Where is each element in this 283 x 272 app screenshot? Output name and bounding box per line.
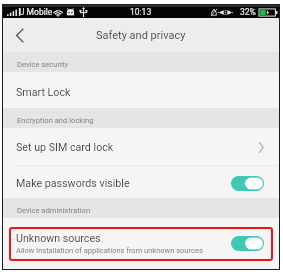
staticText: Unknown sources (16, 232, 101, 245)
staticText: Safety and privacy (96, 29, 186, 42)
staticText: 10:13 (130, 7, 152, 17)
button[interactable]: Smart Lock (3, 76, 279, 108)
button[interactable]: Set up SIM card lock (3, 129, 279, 166)
staticText: Device administration (17, 206, 91, 215)
button[interactable]: Make passwords visible (3, 167, 279, 199)
staticText: Smart Lock (16, 86, 71, 99)
staticText: Device security (17, 60, 68, 69)
button[interactable]: Unknown sources (3, 226, 279, 260)
staticText: Set up SIM card lock (16, 141, 114, 154)
staticText: Allow installation of applications from … (16, 246, 203, 255)
button[interactable]: Toggle on (231, 176, 264, 191)
button[interactable]: Toggle on (231, 236, 264, 251)
staticText: Encryption and locking (17, 116, 94, 125)
staticText: U Mobile (19, 7, 53, 17)
staticText: 32% (240, 7, 256, 17)
button[interactable]: Back (5, 18, 35, 52)
staticText: Make passwords visible (16, 177, 130, 190)
